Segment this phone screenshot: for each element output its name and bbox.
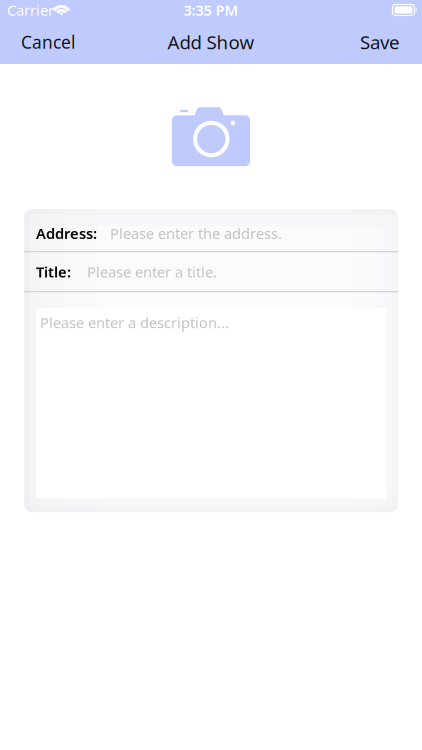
staticText: Please enter a title. xyxy=(87,262,217,281)
button[interactable]: Title: xyxy=(24,252,398,291)
staticText: Add Show xyxy=(167,30,254,54)
button[interactable]: Address: xyxy=(24,209,398,251)
staticText: Cancel xyxy=(21,30,75,53)
staticText: Title: xyxy=(36,262,71,281)
staticText: Please enter a description... xyxy=(40,313,229,332)
staticText: Address: xyxy=(36,223,97,243)
button[interactable]: Please enter a description... xyxy=(36,292,386,512)
staticText: Please enter the address. xyxy=(110,223,282,243)
staticText: 3:35 PM xyxy=(183,0,238,20)
staticText: Carrier xyxy=(7,0,54,20)
staticText: Save xyxy=(360,30,400,54)
button[interactable]: Save xyxy=(346,20,422,64)
button[interactable]: Cancel xyxy=(0,20,89,64)
